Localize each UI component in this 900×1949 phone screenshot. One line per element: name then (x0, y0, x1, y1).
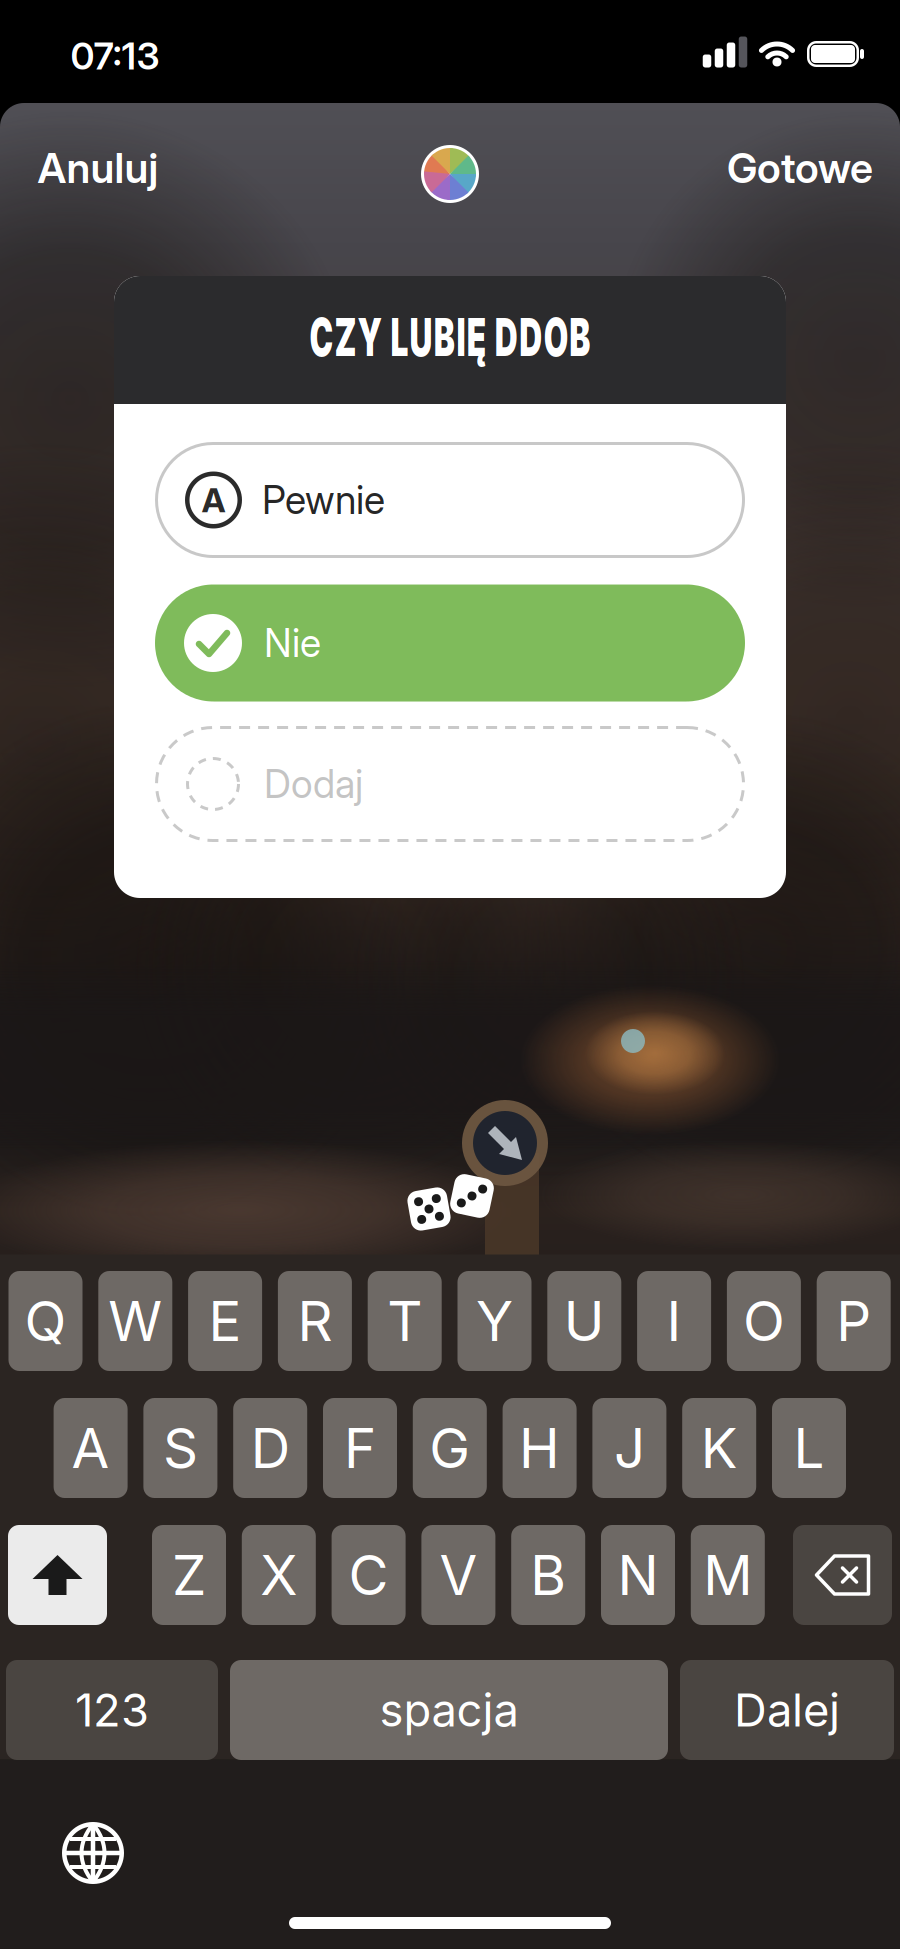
button[interactable]: Z (152, 1525, 226, 1625)
staticText: V (439, 1543, 477, 1607)
button[interactable]: A (54, 1398, 128, 1498)
button[interactable]: spacja (230, 1660, 668, 1760)
button[interactable]: Dalej (680, 1660, 894, 1760)
staticText: B (530, 1543, 566, 1607)
button[interactable]: L (772, 1398, 846, 1498)
button[interactable]: Y (457, 1271, 531, 1371)
staticText: Dodaj (264, 761, 363, 807)
button[interactable]: P (817, 1271, 891, 1371)
button[interactable]: H (503, 1398, 577, 1498)
staticText: U (564, 1289, 605, 1353)
staticText: J (614, 1416, 645, 1480)
staticText: Pewnie (262, 477, 385, 523)
staticText: F (344, 1416, 376, 1480)
staticText: R (297, 1289, 332, 1353)
button[interactable]: C (332, 1525, 406, 1625)
staticText: 123 (75, 1683, 149, 1737)
button[interactable]: Q (8, 1271, 82, 1371)
staticText: G (429, 1416, 470, 1480)
staticText: Y (476, 1289, 513, 1353)
staticText: T (387, 1289, 422, 1353)
button[interactable]: N (601, 1525, 675, 1625)
staticText: Anuluj (37, 144, 158, 192)
button[interactable]: F (323, 1398, 397, 1498)
button[interactable]: B (511, 1525, 585, 1625)
button[interactable]: D (233, 1398, 307, 1498)
staticText: CZY LUBIĘ DDOB (219, 305, 680, 368)
button[interactable]: U (547, 1271, 621, 1371)
staticText: A (72, 1416, 110, 1480)
button[interactable]: Dodaj (155, 726, 745, 842)
button[interactable]: Następna klawiatura (61, 1821, 125, 1885)
staticText: O (743, 1289, 785, 1353)
staticText: H (519, 1416, 560, 1480)
staticText: X (260, 1543, 297, 1607)
staticText: K (701, 1416, 738, 1480)
staticText: Z (172, 1543, 206, 1607)
button[interactable]: Kolor (421, 145, 479, 203)
button[interactable]: Shift (8, 1525, 107, 1625)
staticText: L (793, 1416, 824, 1480)
staticText: E (209, 1289, 242, 1353)
button[interactable]: W (98, 1271, 172, 1371)
button[interactable]: I (637, 1271, 711, 1371)
button[interactable]: A (155, 442, 745, 558)
button[interactable]: J (592, 1398, 666, 1498)
staticText: I (667, 1289, 682, 1353)
button[interactable]: S (143, 1398, 217, 1498)
button[interactable]: M (691, 1525, 765, 1625)
button[interactable]: Nie (155, 584, 745, 701)
staticText: Q (24, 1289, 66, 1353)
staticText: Nie (264, 620, 321, 666)
button[interactable]: T (368, 1271, 442, 1371)
button[interactable]: Gotowe (727, 144, 873, 192)
button[interactable]: K (682, 1398, 756, 1498)
button[interactable]: E (188, 1271, 262, 1371)
button[interactable]: Anuluj (37, 144, 158, 192)
button[interactable]: R (278, 1271, 352, 1371)
staticText: W (108, 1289, 162, 1353)
staticText: 07:13 (70, 34, 159, 78)
button[interactable]: Usuń (793, 1525, 892, 1625)
staticText: M (703, 1543, 752, 1607)
staticText: P (836, 1289, 871, 1353)
button[interactable]: V (421, 1525, 495, 1625)
button[interactable]: X (242, 1525, 316, 1625)
staticText: spacja (379, 1683, 518, 1737)
staticText: D (251, 1416, 290, 1480)
staticText: Gotowe (727, 144, 873, 192)
staticText: N (617, 1543, 658, 1607)
button[interactable]: G (413, 1398, 487, 1498)
button[interactable]: O (727, 1271, 801, 1371)
button[interactable]: 123 (6, 1660, 218, 1760)
staticText: A (201, 480, 225, 520)
staticText: S (163, 1416, 198, 1480)
staticText: Dalej (734, 1683, 840, 1737)
staticText: C (349, 1543, 389, 1607)
